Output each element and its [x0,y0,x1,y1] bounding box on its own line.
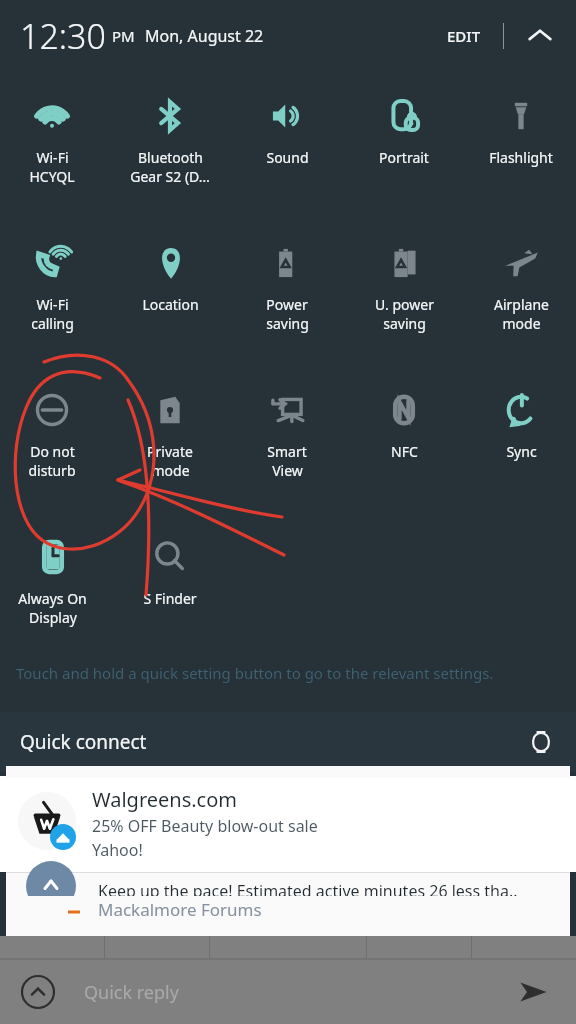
staticText: Mon, August 22 [145,25,264,47]
staticText: Do not [30,442,75,461]
button[interactable]: Sync [465,384,576,484]
button[interactable]: Private [114,384,226,484]
staticText: Wi-Fi [36,148,69,167]
button[interactable]: Collapse panel [522,18,558,54]
staticText: saving [383,314,426,333]
button[interactable]: Quick connect [0,712,576,772]
staticText: Wi-Fi [36,295,69,314]
button[interactable]: U. power [348,237,460,337]
staticText: View [272,461,303,480]
staticText: Walgreens.com [92,786,237,813]
button[interactable]: Bluetooth [114,90,226,190]
staticText: EDIT [447,26,481,46]
staticText: Touch and hold a quick setting button to… [16,663,494,683]
staticText: Gear S2 (D… [130,167,210,186]
button[interactable]: Do not [0,384,108,484]
staticText: 12:30 [20,13,106,59]
staticText: Portrait [379,148,429,167]
staticText: Sound [266,148,309,167]
button[interactable]: Flashlight [465,90,576,190]
staticText: Location [142,295,199,314]
staticText: Airplane [494,295,549,314]
button[interactable]: Airplane [465,237,576,337]
button[interactable]: Wi-Fi [0,237,108,337]
button[interactable]: Walgreens.com [0,776,576,872]
button[interactable]: Send [510,969,556,1015]
button[interactable]: NFC [348,384,460,484]
staticText: disturb [28,461,76,480]
staticText: Keep up the pace! Estimated active minut… [98,880,518,902]
button[interactable]: Always On [0,531,108,631]
button[interactable]: Quick reply [84,980,510,1005]
staticText: Quick connect [20,729,147,755]
staticText: Bluetooth [138,148,203,167]
button[interactable]: Power [231,237,343,337]
staticText: calling [31,314,74,333]
staticText: Smart [267,442,307,461]
staticText: Yahoo! [92,839,143,861]
button[interactable]: Portrait [348,90,460,190]
button[interactable]: Wi-Fi [0,90,108,190]
staticText: Always On [18,589,87,608]
button[interactable]: S Finder [114,531,226,631]
staticText: 25% OFF Beauty blow-out sale [92,815,318,837]
staticText: S Finder [143,589,197,608]
staticText: Mackalmore Forums [98,898,262,921]
staticText: Private [147,442,193,461]
staticText: PM [112,26,135,46]
staticText: saving [266,314,309,333]
button[interactable]: EDIT [439,20,489,52]
staticText: Power [266,295,308,314]
staticText: Display [29,608,77,627]
staticText: mode [502,314,541,333]
staticText: U. power [375,295,434,314]
staticText: Quick reply [84,980,179,1005]
button[interactable]: Location [114,237,226,337]
button[interactable]: Keep up the pace! Estimated active minut… [6,873,570,909]
button[interactable]: Sound [231,90,343,190]
staticText: Sync [506,442,537,461]
button[interactable]: Expand [16,970,60,1014]
staticText: mode [151,461,190,480]
button[interactable]: Smart [231,384,343,484]
staticText: NFC [391,442,418,461]
staticText: Flashlight [489,148,553,167]
staticText: HCYQL [29,167,75,186]
